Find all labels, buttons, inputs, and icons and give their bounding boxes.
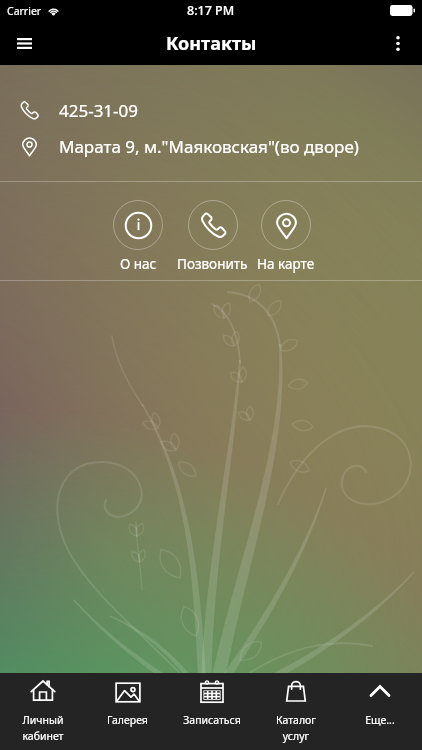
staticText: О нас (120, 255, 157, 273)
staticText: Записаться (183, 713, 241, 727)
staticText: Позвонить (177, 255, 248, 273)
staticText: Марата 9, м."Маяковская"(во дворе) (59, 135, 359, 158)
button[interactable]: О нас (100, 182, 176, 273)
staticText: Галерея (107, 713, 148, 727)
button[interactable]: 425-31-09 (0, 92, 422, 128)
button[interactable]: Позвонить (176, 182, 249, 273)
button[interactable]: На карте (249, 182, 323, 273)
button[interactable]: Еще... (338, 673, 422, 750)
button[interactable]: More options (376, 21, 420, 65)
staticText: 8:17 PM (187, 2, 235, 19)
button[interactable]: Записаться (170, 673, 254, 750)
staticText: На карте (257, 255, 315, 273)
button[interactable]: Галерея (85, 673, 170, 750)
button[interactable]: Каталог услуг (254, 673, 338, 750)
button[interactable]: Open navigation menu (2, 21, 46, 65)
staticText: Carrier (7, 4, 42, 18)
button[interactable]: Марата 9, м."Маяковская"(во дворе) (0, 128, 422, 164)
staticText: Личный кабинет (22, 713, 64, 743)
staticText: Каталог услуг (276, 713, 316, 743)
staticText: Контакты (166, 31, 257, 56)
staticText: Еще... (365, 713, 395, 727)
staticText: 425-31-09 (59, 99, 139, 122)
button[interactable]: Личный кабинет (0, 673, 85, 750)
